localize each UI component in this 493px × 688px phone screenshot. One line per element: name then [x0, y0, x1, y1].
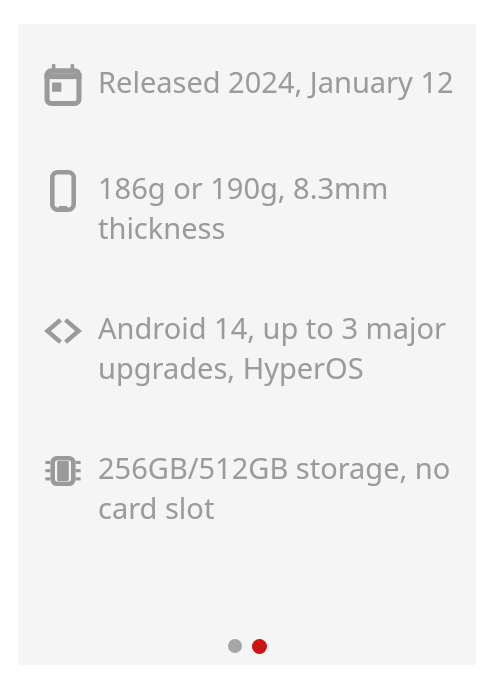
- button[interactable]: Software: [18, 308, 476, 388]
- other: Storage: [28, 448, 98, 494]
- button[interactable]: Page 2: [247, 637, 271, 655]
- button[interactable]: Body: [18, 168, 476, 248]
- staticText: Released 2024, January 12: [98, 62, 454, 101]
- button[interactable]: Page 1: [223, 637, 247, 655]
- staticText: 256GB/512GB storage, no card slot: [98, 448, 458, 528]
- other: Software: [28, 308, 98, 354]
- button[interactable]: Storage: [18, 448, 476, 528]
- staticText: 186g or 190g, 8.3mm thickness: [98, 168, 458, 248]
- other: Release date: [28, 62, 98, 108]
- button[interactable]: Release date: [18, 62, 476, 108]
- staticText: Android 14, up to 3 major upgrades, Hype…: [98, 308, 458, 388]
- other: Body: [28, 168, 98, 214]
